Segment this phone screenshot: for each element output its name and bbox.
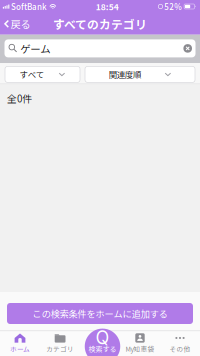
button[interactable]: その他 [160,331,200,356]
staticText: 全0件 [7,91,32,105]
staticText: カテゴリ [46,344,74,354]
staticText: ゲーム [20,41,50,56]
button[interactable]: カテゴリ [40,331,80,356]
button[interactable]: My知恵袋 [120,331,160,356]
button[interactable]: すべて [5,66,80,82]
staticText: 18:54 [96,0,119,13]
staticText: 52% [164,1,182,12]
button[interactable]: ホーム [0,331,40,356]
button[interactable]: Q [85,329,120,356]
staticText: 関連度順 [109,68,141,80]
button[interactable]: 関連度順 [85,66,195,82]
button[interactable]: 戻る [0,13,34,34]
staticText: SoftBank [11,1,47,12]
staticText: 検索する [88,344,116,354]
button[interactable]: 入力を消去 [183,44,192,53]
staticText: ホーム [10,344,30,354]
staticText: この検索条件をホームに追加する [32,307,167,320]
staticText: その他 [169,344,190,354]
staticText: すべて [20,68,44,80]
staticText: すべてのカテゴリ [53,15,147,32]
staticText: 戻る [10,16,30,31]
button[interactable] [80,331,120,356]
button[interactable]: この検索条件をホームに追加する [7,303,193,324]
staticText: My知恵袋 [125,344,154,354]
staticText: Q [95,327,109,348]
